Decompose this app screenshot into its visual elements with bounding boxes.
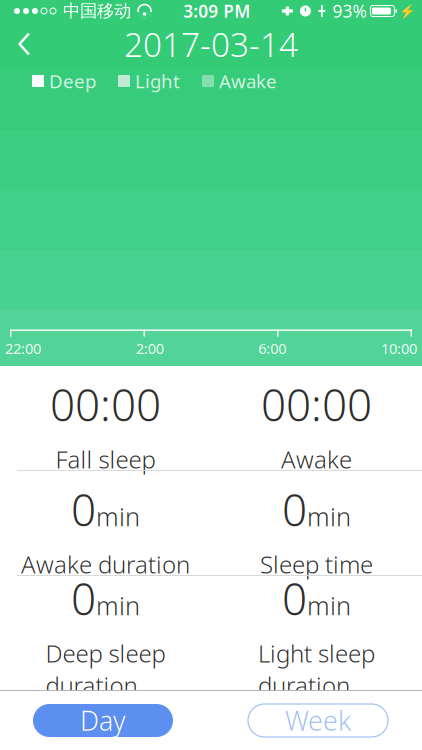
staticText: min xyxy=(307,588,351,622)
staticText: Awake duration xyxy=(21,548,190,580)
button[interactable]: Back xyxy=(0,22,48,66)
staticText: Deep sleep duration xyxy=(45,637,165,701)
staticText: 22:00 xyxy=(5,338,41,358)
staticText: 93% xyxy=(332,0,366,22)
staticText: 10:00 xyxy=(381,338,417,358)
staticText: min xyxy=(96,588,140,622)
staticText: Light xyxy=(135,69,180,93)
staticText: 0 xyxy=(71,480,96,538)
staticText: Fall sleep xyxy=(55,443,155,475)
staticText: Sleep time xyxy=(260,548,373,580)
staticText: Week xyxy=(285,703,351,738)
staticText: 2017-03-14 xyxy=(124,22,298,66)
staticText: 00:00 xyxy=(261,375,372,433)
staticText: Awake xyxy=(219,69,277,93)
staticText: 3:09 PM xyxy=(183,0,250,22)
staticText: min xyxy=(307,499,351,533)
staticText: 6:00 xyxy=(258,338,286,358)
staticText: 0 xyxy=(282,569,307,627)
staticText: min xyxy=(96,499,140,533)
staticText: ⚡ xyxy=(399,3,416,19)
button[interactable]: Week xyxy=(248,704,388,737)
staticText: Awake xyxy=(281,443,352,475)
staticText: 中国移动 xyxy=(63,0,131,22)
staticText: 00:00 xyxy=(50,375,161,433)
staticText: Deep xyxy=(49,69,96,93)
button[interactable]: Day xyxy=(33,704,173,737)
staticText: 0 xyxy=(71,569,96,627)
staticText: 0 xyxy=(282,480,307,538)
staticText: 2:00 xyxy=(136,338,164,358)
staticText: Light sleep duration xyxy=(258,637,375,701)
staticText: Day xyxy=(80,703,126,738)
